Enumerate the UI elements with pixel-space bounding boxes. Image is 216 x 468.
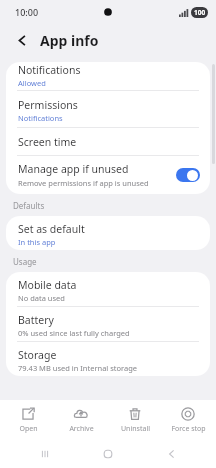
button[interactable]: Uninstall	[109, 400, 161, 440]
staticText: Notifications	[18, 63, 81, 77]
button[interactable]: Home	[89, 440, 127, 468]
staticText: Allowed	[18, 78, 46, 88]
staticText: No data used	[18, 293, 65, 303]
button[interactable]: Manage app if unused	[6, 156, 210, 194]
staticText: Set as default	[18, 222, 85, 236]
staticText: Uninstall	[121, 424, 150, 434]
staticText: Screen time	[18, 135, 77, 149]
staticText: Open	[19, 424, 38, 434]
staticText: Manage app if unused	[18, 162, 129, 176]
staticText: In this app	[18, 237, 56, 247]
staticText: 79.43 MB used in Internal storage	[18, 363, 138, 373]
button[interactable]: Set as default	[6, 216, 210, 250]
staticText: App info	[40, 31, 99, 50]
staticText: Remove permissions if app is unused	[18, 178, 149, 188]
button[interactable]: Storage	[6, 342, 210, 376]
staticText: Mobile data	[18, 278, 77, 292]
button[interactable]: Notifications	[6, 62, 210, 90]
button[interactable]: Manage app if unused	[176, 168, 200, 182]
staticText: Defaults	[13, 200, 45, 211]
staticText: Archive	[69, 424, 94, 434]
button[interactable]: Recents	[26, 440, 64, 468]
button[interactable]: Permissions	[6, 91, 210, 127]
button[interactable]: Back	[153, 440, 191, 468]
staticText: 10:00	[15, 6, 39, 18]
button[interactable]: Screen time	[6, 128, 210, 155]
staticText: Storage	[18, 348, 57, 362]
button[interactable]: Back	[12, 30, 32, 50]
staticText: 0% used since last fully charged	[18, 328, 130, 338]
button[interactable]: Force stop	[162, 400, 214, 440]
staticText: 100	[194, 8, 206, 17]
staticText: Usage	[13, 256, 37, 267]
button[interactable]: Battery	[6, 307, 210, 341]
button[interactable]: Mobile data	[6, 272, 210, 306]
button[interactable]: Open	[2, 400, 54, 440]
staticText: Battery	[18, 313, 54, 327]
button[interactable]: Archive	[55, 400, 107, 440]
staticText: Permissions	[18, 98, 78, 112]
staticText: Force stop	[171, 424, 206, 434]
staticText: Notifications	[18, 113, 63, 123]
